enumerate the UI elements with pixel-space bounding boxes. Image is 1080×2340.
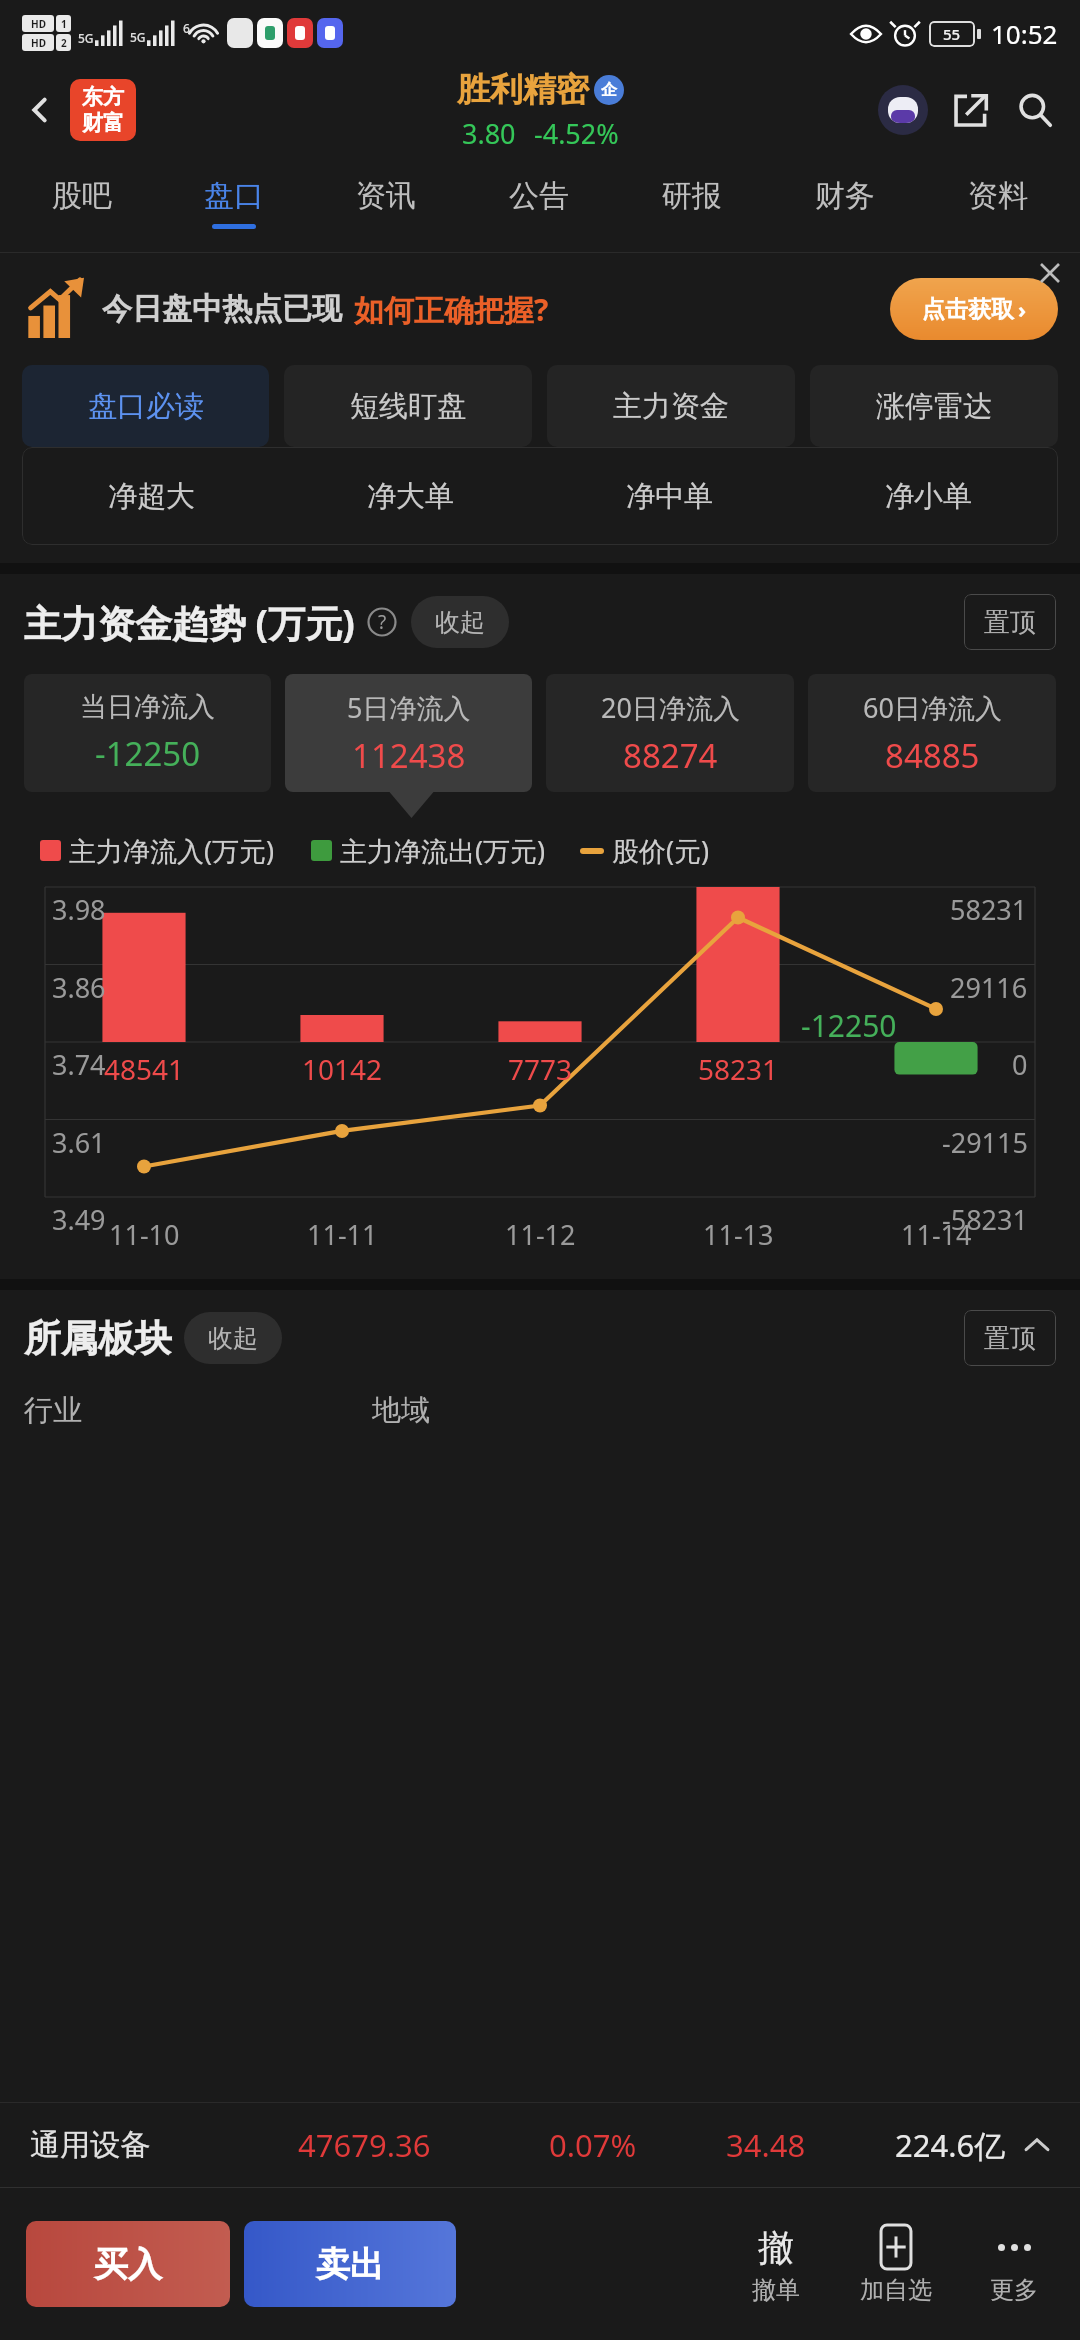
button[interactable]: 60日净流入 <box>808 674 1056 792</box>
button[interactable]: 收起 <box>411 596 509 648</box>
staticText: 5G <box>78 30 94 46</box>
staticText: 行业 <box>24 1392 82 1429</box>
staticText: 撤单 <box>752 2275 800 2305</box>
staticText: -58231 <box>942 1201 1028 1238</box>
staticText: 今日盘中热点已现 <box>102 290 342 328</box>
staticText: 净大单 <box>367 478 454 515</box>
staticText: 撤 <box>758 2225 794 2270</box>
staticText: 3.61 <box>52 1124 106 1161</box>
staticText: 所属板块 <box>24 1315 172 1362</box>
staticText: 58231 <box>698 1050 779 1088</box>
button[interactable]: 通用设备 <box>30 2103 1050 2187</box>
button[interactable]: 点击获取 <box>890 278 1058 340</box>
staticText: 224.6亿 <box>895 2124 1006 2166</box>
button[interactable]: 当日净流入 <box>24 674 271 792</box>
button[interactable]: Share <box>942 81 1000 139</box>
staticText: 10:52 <box>991 16 1058 51</box>
staticText: 11-10 <box>109 1216 180 1253</box>
button[interactable]: 5日净流入 <box>285 674 532 792</box>
button[interactable]: 撤 <box>728 2219 824 2309</box>
staticText: 资料 <box>968 177 1028 215</box>
staticText: 公告 <box>509 177 569 215</box>
button[interactable]: 卖出 <box>244 2221 456 2307</box>
staticText: 置顶 <box>984 1322 1036 1355</box>
button[interactable]: 财务 <box>768 154 921 252</box>
staticText: 财富 <box>82 110 124 136</box>
button[interactable]: 资料 <box>921 154 1074 252</box>
staticText: 如何正确把握? <box>354 289 549 330</box>
button[interactable]: Close ad <box>1032 255 1068 291</box>
staticText: 58231 <box>950 891 1028 928</box>
staticText: 3.74 <box>52 1046 106 1083</box>
button[interactable]: Assistant <box>874 81 932 139</box>
staticText: 88274 <box>623 733 718 778</box>
button[interactable]: 置顶 <box>964 594 1056 650</box>
button[interactable]: 20日净流入 <box>546 674 794 792</box>
staticText: 主力资金 <box>613 388 729 425</box>
button[interactable]: 加自选 <box>848 2219 944 2309</box>
staticText: 20日净流入 <box>601 689 740 726</box>
staticText: › <box>1018 294 1027 324</box>
button[interactable]: Search <box>1006 81 1064 139</box>
staticText: 11-14 <box>901 1216 972 1253</box>
button[interactable]: 公告 <box>462 154 615 252</box>
staticText: -12250 <box>801 1005 897 1046</box>
staticText: 10142 <box>302 1050 383 1088</box>
staticText: 5日净流入 <box>347 689 471 726</box>
staticText: 当日净流入 <box>80 690 215 724</box>
button[interactable]: 涨停雷达 <box>810 365 1058 447</box>
staticText: 股吧 <box>52 177 112 215</box>
staticText: HD <box>31 36 46 50</box>
staticText: -29115 <box>942 1124 1028 1161</box>
button[interactable]: 收起 <box>184 1312 282 1364</box>
staticText: 东方 <box>82 84 124 110</box>
staticText: 短线盯盘 <box>350 388 466 425</box>
staticText: 通用设备 <box>30 2126 150 2164</box>
staticText: 主力资金趋势 (万元) <box>24 597 355 648</box>
button[interactable]: Help <box>365 605 399 639</box>
staticText: 买入 <box>94 2243 162 2286</box>
button[interactable]: 短线盯盘 <box>284 365 532 447</box>
staticText: 盘口必读 <box>88 388 204 425</box>
staticText: ? <box>378 609 387 635</box>
staticText: 34.48 <box>726 2124 806 2166</box>
staticText: 2 <box>61 36 67 50</box>
button[interactable]: 盘口必读 <box>22 365 269 447</box>
staticText: 5G <box>130 29 146 45</box>
staticText: 11-12 <box>505 1216 576 1253</box>
staticText: 1 <box>61 17 67 31</box>
button[interactable]: 东方 <box>70 79 136 141</box>
staticText: 主力净流出(万元) <box>340 832 546 869</box>
button[interactable]: 净大单 <box>281 447 540 545</box>
staticText: HD <box>31 17 46 31</box>
button[interactable]: 盘口 <box>158 154 310 252</box>
button[interactable]: 买入 <box>26 2221 230 2307</box>
staticText: 3.80 <box>462 115 516 152</box>
staticText: 29116 <box>950 969 1028 1006</box>
button[interactable]: 资讯 <box>310 154 462 252</box>
staticText: 84885 <box>885 733 980 778</box>
staticText: 0 <box>1012 1046 1028 1083</box>
staticText: 3.86 <box>52 969 106 1006</box>
button[interactable]: 股吧 <box>6 154 158 252</box>
button[interactable]: 研报 <box>615 154 768 252</box>
button[interactable]: 净中单 <box>540 447 799 545</box>
staticText: 11-13 <box>703 1216 774 1253</box>
staticText: 60日净流入 <box>863 689 1002 726</box>
staticText: -4.52% <box>534 115 619 152</box>
button[interactable]: 净超大 <box>22 447 281 545</box>
staticText: 胜利精密 <box>457 69 589 111</box>
staticText: 11-11 <box>307 1216 378 1253</box>
button[interactable]: 主力资金 <box>547 365 795 447</box>
staticText: 收起 <box>435 607 485 638</box>
button[interactable]: 净小单 <box>799 447 1058 545</box>
button[interactable]: 更多 <box>966 2219 1062 2309</box>
staticText: 财务 <box>815 177 875 215</box>
staticText: 3.49 <box>52 1201 106 1238</box>
button[interactable]: 置顶 <box>964 1310 1056 1366</box>
button[interactable]: Back <box>14 84 66 136</box>
staticText: 主力净流入(万元) <box>69 832 275 869</box>
staticText: 企 <box>601 80 617 100</box>
staticText: 净小单 <box>885 478 972 515</box>
staticText: 股价(元) <box>612 832 710 869</box>
